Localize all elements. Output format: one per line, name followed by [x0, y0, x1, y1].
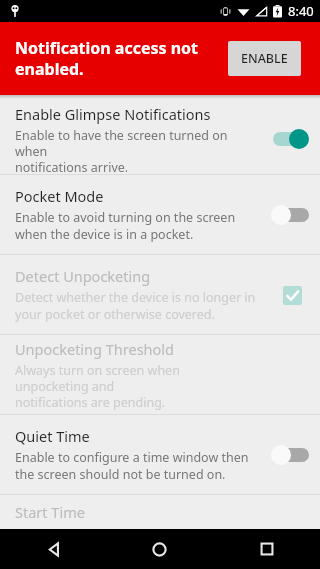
- staticText: Pocket Mode: [15, 186, 104, 206]
- staticText: Detect Unpocketing: [15, 266, 151, 286]
- staticText: Enable to avoid turning on the screen: [15, 209, 236, 226]
- button[interactable]: Start Time: [0, 495, 320, 529]
- button[interactable]: Home: [106, 529, 213, 569]
- staticText: Always turn on screen when unpocketing a…: [15, 362, 256, 394]
- button[interactable]: Detect Unpocketing: [0, 255, 320, 334]
- staticText: Quiet Time: [15, 426, 90, 446]
- staticText: your pocket or otherwise covered.: [15, 306, 215, 323]
- staticText: notifications are pending.: [15, 394, 166, 411]
- staticText: when the device is in a pocket.: [15, 226, 194, 243]
- button[interactable]: Unpocketing Threshold: [0, 335, 320, 414]
- staticText: Enable to have the screen turned on when: [15, 127, 256, 159]
- staticText: Enable to configure a time window then: [15, 449, 249, 466]
- staticText: the screen should not be turned on.: [15, 466, 226, 483]
- staticText: ENABLE: [241, 50, 288, 67]
- staticText: Notification access not enabled.: [15, 37, 199, 80]
- staticText: Start Time: [15, 502, 85, 522]
- staticText: 8:40: [288, 2, 314, 20]
- staticText: Enable Glimpse Notifications: [15, 104, 211, 124]
- button[interactable]: Pocket Mode: [0, 175, 320, 254]
- button[interactable]: Quiet Time: [0, 415, 320, 494]
- staticText: Detect whether the device is no longer i…: [15, 289, 256, 306]
- button[interactable]: Recent apps: [213, 529, 320, 569]
- staticText: notifications arrive.: [15, 159, 129, 174]
- button[interactable]: Back: [0, 529, 106, 569]
- button[interactable]: Enable Glimpse Notifications: [0, 104, 320, 174]
- button[interactable]: ENABLE: [228, 41, 301, 76]
- staticText: Unpocketing Threshold: [15, 339, 174, 359]
